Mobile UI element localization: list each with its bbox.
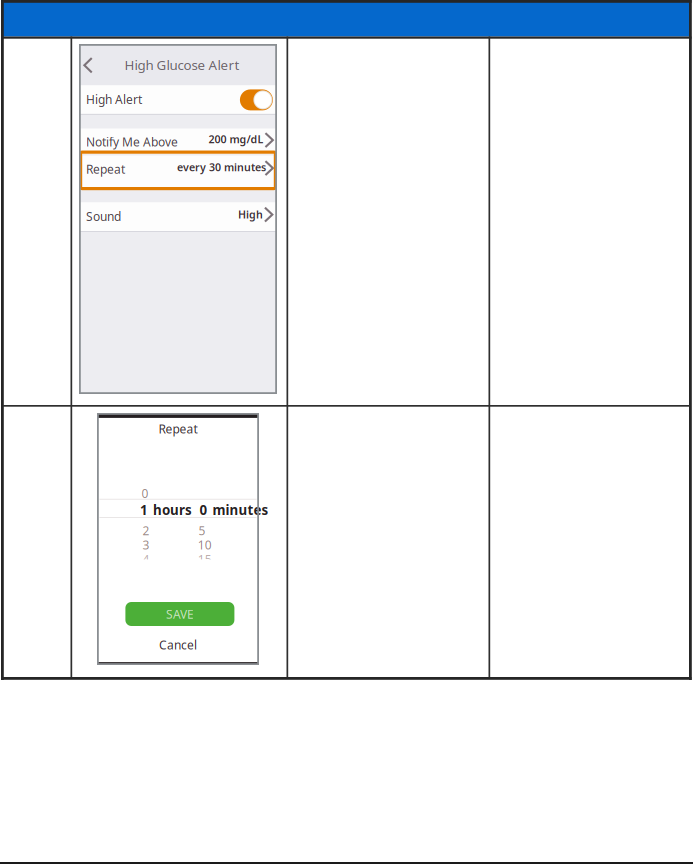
staticText: 0 bbox=[141, 485, 148, 501]
staticText: 5 bbox=[198, 523, 205, 539]
button[interactable]: Repeat bbox=[80, 152, 276, 189]
button[interactable]: Back bbox=[81, 51, 103, 79]
button[interactable]: High Alert bbox=[240, 89, 273, 110]
staticText: Sound bbox=[86, 208, 121, 224]
staticText: High Alert bbox=[86, 91, 142, 107]
staticText: High bbox=[238, 207, 263, 221]
staticText: 4 bbox=[142, 551, 149, 567]
button[interactable]: Sound bbox=[80, 202, 276, 231]
staticText: 1 bbox=[140, 501, 148, 519]
staticText: High Glucose Alert bbox=[124, 56, 239, 74]
staticText: hours bbox=[153, 501, 192, 519]
staticText: Repeat bbox=[158, 421, 197, 437]
staticText: Repeat bbox=[86, 161, 125, 177]
staticText: Cancel bbox=[159, 637, 197, 653]
button[interactable]: Notify Me Above bbox=[80, 128, 276, 152]
staticText: SAVE bbox=[166, 606, 194, 622]
button[interactable]: SAVE bbox=[125, 602, 234, 626]
staticText: 200 mg/dL bbox=[208, 132, 263, 146]
staticText: every 30 minutes bbox=[177, 160, 266, 174]
staticText: 15 bbox=[198, 551, 212, 567]
staticText: 0 bbox=[199, 501, 207, 519]
staticText: 10 bbox=[198, 537, 212, 553]
staticText: Notify Me Above bbox=[86, 134, 178, 150]
staticText: 3 bbox=[142, 537, 149, 553]
button[interactable]: Cancel bbox=[98, 638, 258, 651]
staticText: minutes bbox=[212, 501, 268, 519]
staticText: 2 bbox=[142, 523, 149, 539]
